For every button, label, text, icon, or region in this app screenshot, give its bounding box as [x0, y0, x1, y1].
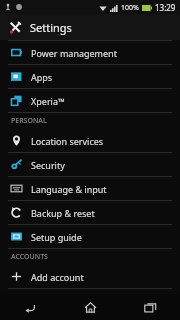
staticText: Power management [31, 47, 117, 59]
staticText: Backup & reset [31, 207, 95, 219]
staticText: PERSONAL [11, 116, 47, 126]
staticText: Language & input [31, 183, 107, 195]
staticText: Setup guide [31, 231, 82, 243]
button[interactable]: Add account [0, 265, 180, 288]
staticText: 13:29 [155, 2, 176, 13]
button[interactable]: Power management [0, 41, 180, 64]
button[interactable]: Recent apps [120, 294, 180, 320]
button[interactable]: Language & input [0, 177, 180, 200]
staticText: Apps [31, 71, 53, 83]
staticText: ACCOUNTS [11, 252, 48, 262]
button[interactable]: Apps [0, 65, 180, 88]
button[interactable]: Security [0, 153, 180, 176]
staticText: Add account [31, 271, 84, 283]
button[interactable]: Settings [0, 14, 180, 40]
button[interactable]: Setup guide [0, 225, 180, 248]
staticText: Security [31, 159, 65, 171]
staticText: Xperia™ [31, 95, 65, 107]
button[interactable]: Home [60, 294, 120, 320]
staticText: 100% [121, 3, 139, 13]
button[interactable]: Backup & reset [0, 201, 180, 224]
button[interactable]: Back [0, 294, 60, 320]
button[interactable]: Xperia™ [0, 89, 180, 112]
staticText: Settings [30, 20, 72, 35]
button[interactable]: Location services [0, 129, 180, 152]
staticText: Location services [31, 135, 104, 147]
